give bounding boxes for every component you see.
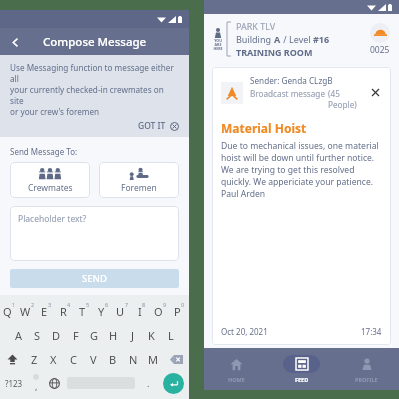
- staticText: I: [138, 304, 142, 319]
- staticText: C: [70, 352, 77, 367]
- button[interactable]: Change language: [45, 371, 63, 395]
- staticText: Material Hoist: [221, 120, 307, 136]
- button[interactable]: SEND: [10, 269, 179, 288]
- button[interactable]: J: [123, 323, 142, 347]
- staticText: ?123: [5, 378, 23, 389]
- button[interactable]: H: [104, 323, 123, 347]
- button[interactable]: M: [143, 347, 163, 371]
- staticText: U: [116, 304, 125, 319]
- button[interactable]: Sender: Genda CLzgB: [212, 67, 391, 345]
- staticText: J: [131, 328, 135, 343]
- staticText: Z: [31, 352, 38, 367]
- button[interactable]: V: [83, 347, 103, 371]
- staticText: 2: [31, 301, 35, 308]
- button[interactable]: O: [151, 299, 170, 323]
- staticText: PARK TLV: [236, 20, 276, 32]
- staticText: #16: [313, 33, 330, 45]
- button[interactable]: Foremen: [99, 162, 179, 198]
- staticText: SEND: [82, 272, 107, 285]
- button[interactable]: Backspace: [163, 347, 189, 371]
- staticText: 0: [181, 301, 185, 308]
- button[interactable]: A: [9, 323, 28, 347]
- staticText: Placeholder text?: [18, 213, 87, 225]
- button[interactable]: HOME: [204, 348, 269, 390]
- button[interactable]: U: [113, 299, 132, 323]
- button[interactable]: X: [44, 347, 63, 371]
- staticText: 0025: [370, 44, 390, 56]
- staticText: M: [148, 352, 158, 367]
- button[interactable]: Placeholder text?: [10, 206, 179, 261]
- staticText: K: [148, 328, 155, 343]
- staticText: Due to mechanical issues, one material h…: [221, 140, 379, 200]
- button[interactable]: Q: [0, 299, 18, 323]
- staticText: 17:34: [361, 326, 382, 337]
- staticText: Y: [98, 304, 105, 319]
- staticText: / Level: [281, 33, 313, 45]
- staticText: A: [15, 328, 23, 343]
- button[interactable]: I: [132, 299, 151, 323]
- button[interactable]: G: [85, 323, 104, 347]
- staticText: D: [52, 328, 61, 343]
- button[interactable]: B: [103, 347, 123, 371]
- staticText: 6: [105, 301, 109, 308]
- staticText: B: [109, 352, 117, 367]
- staticText: P: [174, 304, 181, 319]
- button[interactable]: S: [28, 323, 47, 347]
- button[interactable]: GOT IT: [138, 120, 179, 132]
- button[interactable]: C: [63, 347, 83, 371]
- button[interactable]: N: [123, 347, 143, 371]
- staticText: Q: [3, 304, 12, 319]
- button[interactable]: P: [170, 299, 189, 323]
- staticText: Broadcast message: [250, 88, 328, 99]
- button[interactable]: Crew count: [370, 23, 390, 56]
- button[interactable]: Crewmates: [10, 162, 90, 198]
- button[interactable]: .: [139, 371, 157, 395]
- staticText: N: [129, 352, 138, 367]
- button[interactable]: E: [37, 299, 56, 323]
- staticText: 8: [142, 301, 146, 308]
- button[interactable]: PROFILE: [334, 348, 399, 390]
- staticText: Crewmates: [28, 182, 73, 194]
- button[interactable]: ?123: [0, 371, 27, 395]
- button[interactable]: Enter: [163, 373, 184, 394]
- button[interactable]: W: [18, 299, 37, 323]
- staticText: Use Messaging function to message either…: [10, 62, 179, 117]
- staticText: R: [60, 304, 67, 319]
- staticText: T: [79, 304, 86, 319]
- staticText: GOT IT: [138, 120, 166, 132]
- button[interactable]: Back: [4, 31, 26, 53]
- staticText: 5: [86, 301, 90, 308]
- staticText: S: [34, 328, 41, 343]
- staticText: TRAINING ROOM: [236, 46, 313, 58]
- staticText: E: [41, 304, 48, 319]
- staticText: A: [274, 33, 281, 45]
- staticText: Building: [236, 33, 274, 45]
- staticText: Compose Message: [43, 34, 147, 50]
- staticText: Foremen: [121, 182, 157, 194]
- staticText: HOME: [228, 376, 245, 383]
- staticText: ,: [35, 380, 38, 392]
- button[interactable]: Close: [369, 86, 382, 99]
- staticText: (45 People): [328, 88, 369, 110]
- button[interactable]: F: [66, 323, 85, 347]
- button[interactable]: L: [161, 323, 180, 347]
- button[interactable]: K: [142, 323, 161, 347]
- staticText: FEED: [295, 376, 309, 383]
- staticText: G: [90, 328, 99, 343]
- staticText: 4: [67, 301, 71, 308]
- staticText: PROFILE: [355, 376, 378, 383]
- staticText: Send Message To:: [10, 146, 78, 157]
- button[interactable]: R: [56, 299, 75, 323]
- button[interactable]: Z: [25, 347, 44, 371]
- button[interactable]: T: [75, 299, 94, 323]
- button[interactable]: Emoji: [27, 371, 45, 395]
- staticText: .: [147, 377, 150, 389]
- staticText: Oct 20, 2021: [221, 326, 268, 337]
- staticText: O: [154, 304, 163, 319]
- staticText: 3: [48, 301, 52, 308]
- button[interactable]: Y: [94, 299, 113, 323]
- button[interactable]: Shift: [0, 347, 25, 371]
- button[interactable]: FEED: [269, 348, 334, 390]
- button[interactable]: D: [47, 323, 66, 347]
